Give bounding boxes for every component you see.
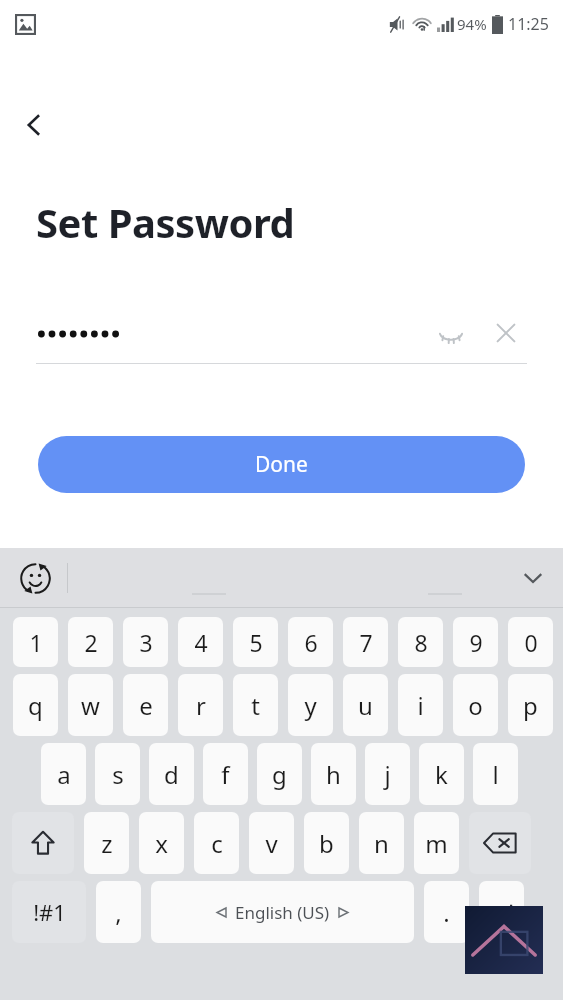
- staticText: h: [326, 758, 341, 791]
- button[interactable]: f: [203, 743, 248, 805]
- button[interactable]: y: [288, 674, 333, 736]
- button[interactable]: n: [359, 812, 404, 874]
- button[interactable]: 8: [398, 617, 443, 667]
- button[interactable]: 9: [453, 617, 498, 667]
- button[interactable]: s: [95, 743, 140, 805]
- button[interactable]: Done: [38, 436, 525, 493]
- staticText: c: [211, 827, 223, 860]
- staticText: z: [101, 827, 113, 860]
- staticText: t: [251, 689, 260, 722]
- button[interactable]: Switch to emoji keyboard: [10, 553, 60, 603]
- button[interactable]: t: [233, 674, 278, 736]
- button[interactable]: 0: [508, 617, 553, 667]
- button[interactable]: 1: [13, 617, 58, 667]
- staticText: i: [417, 689, 424, 722]
- staticText: !#1: [33, 897, 66, 927]
- button[interactable]: Backspace: [469, 812, 531, 874]
- staticText: p: [523, 689, 538, 722]
- staticText: o: [468, 689, 483, 722]
- staticText: j: [384, 758, 391, 791]
- button[interactable]: 3: [123, 617, 168, 667]
- button[interactable]: r: [178, 674, 223, 736]
- staticText: y: [304, 689, 317, 722]
- staticText: x: [155, 827, 168, 860]
- staticText: m: [425, 827, 448, 860]
- button[interactable]: Shift: [12, 812, 74, 874]
- button[interactable]: g: [257, 743, 302, 805]
- button[interactable]: .: [424, 881, 469, 943]
- staticText: g: [272, 758, 287, 791]
- button[interactable]: 6: [288, 617, 333, 667]
- button[interactable]: d: [149, 743, 194, 805]
- staticText: k: [435, 758, 448, 791]
- staticText: 9: [469, 627, 483, 658]
- button[interactable]: a: [41, 743, 86, 805]
- button[interactable]: App preview: [465, 906, 543, 974]
- button[interactable]: q: [13, 674, 58, 736]
- staticText: 11:25: [508, 13, 549, 35]
- button[interactable]: Clear: [482, 309, 530, 357]
- staticText: v: [265, 827, 278, 860]
- button[interactable]: x: [139, 812, 184, 874]
- staticText: 4: [194, 627, 208, 658]
- button[interactable]: 2: [68, 617, 113, 667]
- staticText: n: [374, 827, 389, 860]
- staticText: l: [492, 758, 499, 791]
- button[interactable]: u: [343, 674, 388, 736]
- staticText: 1: [29, 627, 43, 658]
- staticText: e: [139, 689, 153, 722]
- staticText: u: [358, 689, 373, 722]
- staticText: 8: [414, 627, 428, 658]
- button[interactable]: j: [365, 743, 410, 805]
- staticText: w: [81, 689, 100, 722]
- staticText: 3: [139, 627, 153, 658]
- staticText: a: [57, 758, 71, 791]
- button[interactable]: b: [304, 812, 349, 874]
- button[interactable]: Back: [10, 101, 58, 149]
- staticText: English (US): [235, 901, 330, 924]
- button[interactable]: h: [311, 743, 356, 805]
- button[interactable]: 7: [343, 617, 388, 667]
- button[interactable]: ,: [96, 881, 141, 943]
- button[interactable]: 4: [178, 617, 223, 667]
- button[interactable]: o: [453, 674, 498, 736]
- staticText: f: [221, 758, 230, 791]
- button[interactable]: 5: [233, 617, 278, 667]
- button[interactable]: m: [414, 812, 459, 874]
- staticText: q: [28, 689, 43, 722]
- staticText: 2: [84, 627, 98, 658]
- button[interactable]: k: [419, 743, 464, 805]
- staticText: Done: [255, 450, 308, 479]
- button[interactable]: Enter: [479, 881, 524, 943]
- staticText: b: [319, 827, 334, 860]
- staticText: d: [164, 758, 179, 791]
- staticText: 5: [249, 627, 263, 658]
- button[interactable]: v: [249, 812, 294, 874]
- button[interactable]: e: [123, 674, 168, 736]
- button[interactable]: p: [508, 674, 553, 736]
- staticText: 6: [304, 627, 318, 658]
- staticText: 94%: [457, 14, 487, 34]
- staticText: .: [443, 896, 450, 929]
- button[interactable]: Show password: [427, 309, 475, 357]
- staticText: r: [196, 689, 206, 722]
- staticText: ,: [115, 896, 122, 929]
- button[interactable]: Symbols: [12, 881, 86, 943]
- button[interactable]: Hide keyboard: [509, 554, 557, 602]
- button[interactable]: Space, English (US): [151, 881, 414, 943]
- button[interactable]: l: [473, 743, 518, 805]
- button[interactable]: c: [194, 812, 239, 874]
- staticText: s: [112, 758, 124, 791]
- button[interactable]: w: [68, 674, 113, 736]
- staticText: Set Password: [36, 195, 295, 249]
- button[interactable]: i: [398, 674, 443, 736]
- staticText: 0: [524, 627, 538, 658]
- button[interactable]: z: [84, 812, 129, 874]
- staticText: 7: [359, 627, 373, 658]
